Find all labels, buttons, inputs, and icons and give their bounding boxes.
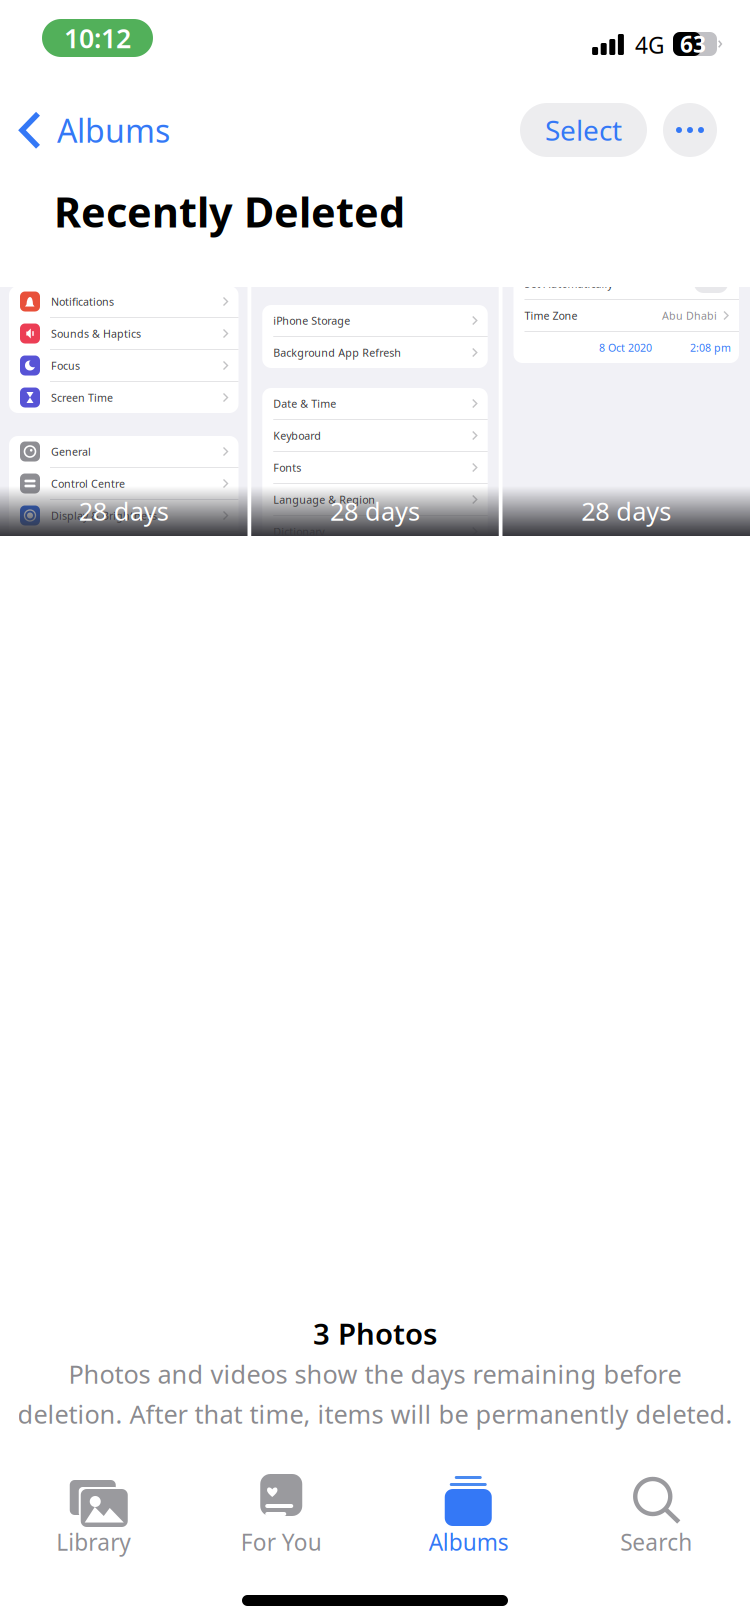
button[interactable]: For You: [187, 1461, 375, 1567]
staticText: For You: [241, 1527, 322, 1557]
button[interactable]: Search: [562, 1461, 750, 1567]
staticText: Sounds & Haptics: [51, 326, 141, 341]
staticText: Library: [56, 1527, 131, 1557]
staticText: Control Centre: [51, 476, 125, 491]
staticText: 28 days: [79, 494, 169, 528]
staticText: Photos and videos show the days remainin…: [68, 1357, 681, 1391]
staticText: Recently Deleted: [54, 184, 405, 239]
staticText: 28 days: [581, 494, 671, 528]
staticText: Dictionary: [273, 524, 324, 539]
staticText: Set Automatically: [524, 276, 612, 291]
staticText: Abu Dhabi: [662, 308, 717, 323]
button[interactable]: Albums: [0, 97, 184, 163]
staticText: Albums: [57, 109, 170, 151]
button[interactable]: More options: [663, 103, 717, 157]
staticText: 63: [680, 29, 706, 59]
staticText: Background App Refresh: [273, 345, 401, 360]
staticText: Screen Time: [51, 390, 113, 405]
staticText: Date & Time: [273, 396, 336, 411]
staticText: Display & Brightness: [51, 508, 157, 523]
staticText: Search: [620, 1527, 692, 1557]
staticText: General: [51, 444, 91, 459]
staticText: 3 Photos: [313, 1314, 437, 1353]
staticText: Language & Region: [273, 492, 375, 507]
staticText: Keyboard: [273, 428, 321, 443]
staticText: 4G: [635, 30, 665, 60]
staticText: 10:12: [64, 20, 131, 56]
staticText: 28 days: [330, 494, 420, 528]
staticText: Fonts: [273, 460, 301, 475]
staticText: 2:08 pm: [690, 340, 731, 355]
staticText: iPhone Storage: [273, 313, 350, 328]
staticText: Albums: [429, 1527, 509, 1557]
button[interactable]: Albums: [375, 1461, 562, 1567]
button[interactable]: Library: [0, 1461, 187, 1567]
staticText: Select: [545, 111, 622, 149]
staticText: 8 Oct 2020: [599, 340, 652, 355]
staticText: Focus: [51, 358, 80, 373]
button[interactable]: Select: [520, 103, 647, 157]
staticText: Time Zone: [524, 308, 577, 323]
staticText: deletion. After that time, items will be…: [17, 1397, 732, 1431]
staticText: Notifications: [51, 294, 114, 309]
